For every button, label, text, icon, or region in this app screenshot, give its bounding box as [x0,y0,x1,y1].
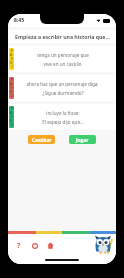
staticText: vive en un castillo [43,61,82,67]
staticText: O [10,119,13,123]
button[interactable]: Target [30,241,39,250]
staticText: 1 [11,65,13,69]
button[interactable]: Jugar [69,135,96,144]
button[interactable]: Help [14,241,23,250]
staticText: Empieza a escribir una historia que… [15,33,110,40]
staticText: tenga un personaje que [37,52,89,58]
staticText: El espejo dijo que... [42,119,84,125]
staticText: S [11,57,13,61]
staticText: ¿Sigue durmiendo? [42,90,84,96]
staticText: P [11,78,13,82]
staticText: P [11,49,13,53]
staticText: 3 [11,123,13,127]
staticText: A [10,53,13,57]
staticText: Jugar [76,137,89,143]
button[interactable]: P [8,75,116,101]
staticText: incluye la frase: [46,110,80,116]
button[interactable]: Mascot [93,235,113,255]
staticText: ahora haz que un personaje diga: [26,81,99,87]
button[interactable]: Cambiar [28,135,55,144]
staticText: S [11,86,13,90]
staticText: 2 [11,94,13,98]
staticText: A [10,82,13,86]
staticText: 8:45 [14,17,24,24]
staticText: Cambiar [32,137,52,143]
button[interactable]: P [8,46,116,72]
button[interactable]: P [8,104,116,130]
staticText: O [10,90,13,94]
button[interactable]: Home [46,241,55,250]
staticText: A [10,111,13,115]
staticText: O [10,61,13,65]
staticText: S [11,115,13,119]
staticText: ? [17,241,21,250]
staticText: P [11,107,13,111]
